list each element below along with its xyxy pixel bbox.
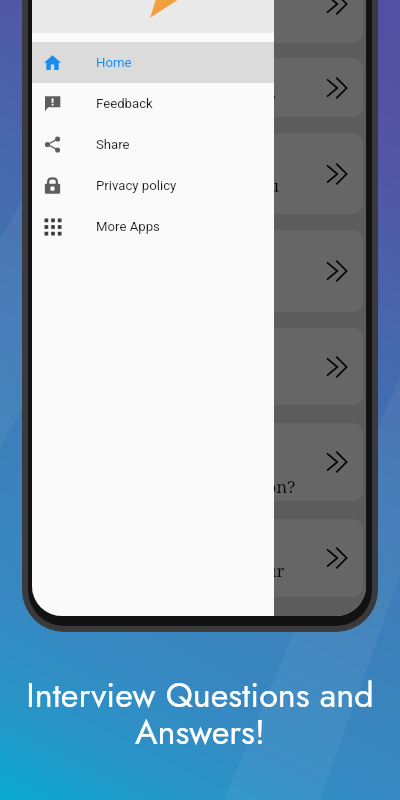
staticText: Interview Questions and Answers!	[0, 670, 400, 757]
button[interactable]: What motivates you most to perform well …	[41, 423, 363, 501]
button[interactable]: Feedback	[32, 83, 274, 124]
button[interactable]: Home	[32, 42, 274, 83]
staticText: Home	[96, 55, 132, 70]
button[interactable]: What are your greatest strengths and wea…	[41, 58, 363, 117]
staticText: What can you bring to this team that wil…	[57, 248, 308, 295]
button[interactable]: Privacy policy	[32, 165, 274, 206]
button[interactable]: How do you deal with the pressure or str…	[41, 328, 363, 405]
button[interactable]: Why are you leaving your current role an…	[41, 519, 363, 597]
button[interactable]: What can you bring to this team that wil…	[41, 230, 363, 312]
button[interactable]: Tell me about yourself and why you want …	[41, 0, 363, 43]
staticText: Why do you want this job role and what i…	[57, 150, 308, 197]
staticText: Feedback	[96, 96, 153, 111]
button[interactable]: More Apps	[32, 206, 274, 247]
staticText: Tell me about yourself and why you want …	[57, 0, 308, 39]
button[interactable]: Why do you want this job role and what i…	[41, 133, 363, 214]
staticText: Privacy policy	[96, 178, 177, 193]
staticText: Why are you leaving your current role an…	[57, 535, 308, 582]
staticText: How do you deal with the pressure or str…	[57, 331, 308, 402]
staticText: What are your greatest strengths and wea…	[57, 64, 308, 111]
staticText: More Apps	[96, 219, 160, 234]
staticText: What motivates you most to perform well …	[57, 427, 308, 498]
button[interactable]: Share	[32, 124, 274, 165]
staticText: Share	[96, 137, 130, 152]
